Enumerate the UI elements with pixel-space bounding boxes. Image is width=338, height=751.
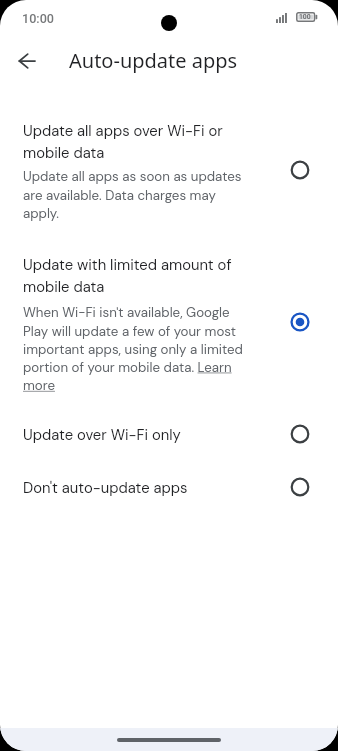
button[interactable]: Option — [280, 467, 320, 507]
button[interactable]: Selected option — [280, 302, 320, 342]
button[interactable]: Update all apps over Wi-Fi or mobile dat… — [23, 121, 245, 222]
button[interactable]: Option — [280, 414, 320, 454]
button[interactable]: Update over Wi-Fi only — [23, 425, 245, 444]
staticText: When Wi-Fi isn't available, Google Play … — [23, 304, 245, 394]
button[interactable]: Update with limited amount of mobile dat… — [23, 255, 245, 394]
staticText: Update with limited amount of mobile dat… — [23, 255, 245, 296]
staticText: Update over Wi-Fi only — [23, 425, 181, 444]
button[interactable]: Back — [7, 41, 47, 81]
staticText: 100 — [299, 13, 311, 21]
staticText: Update all apps as soon as updates are a… — [23, 168, 245, 222]
staticText: Auto-update apps — [69, 47, 238, 74]
staticText: 10:00 — [22, 11, 54, 26]
button[interactable]: Option — [280, 150, 320, 190]
button[interactable]: Don't auto-update apps — [23, 478, 245, 497]
staticText: Update all apps over Wi-Fi or mobile dat… — [23, 121, 245, 162]
staticText: Don't auto-update apps — [23, 478, 188, 497]
